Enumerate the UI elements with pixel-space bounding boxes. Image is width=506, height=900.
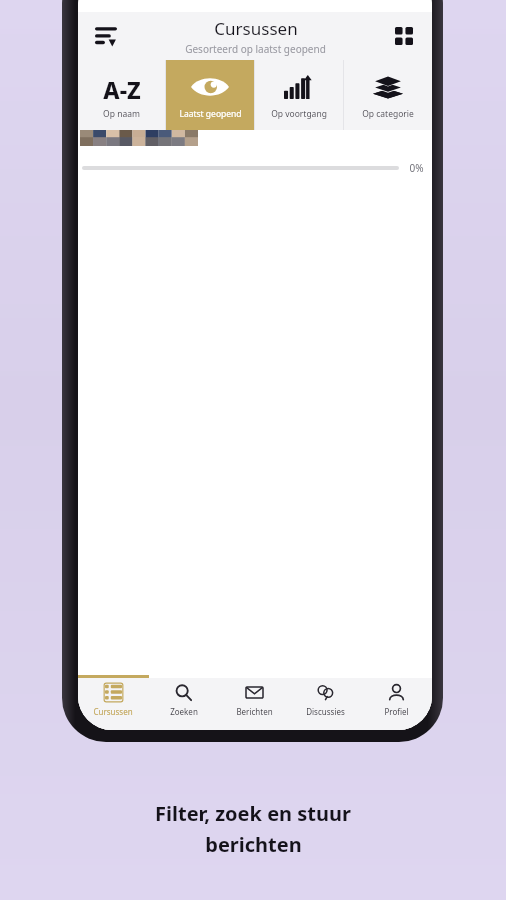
button[interactable]: Discussies — [290, 678, 361, 728]
staticText: Cursussen — [93, 706, 133, 717]
button[interactable]: Sorteren — [86, 16, 126, 56]
staticText: Op categorie — [362, 108, 414, 120]
button[interactable]: Zoeken — [148, 678, 219, 728]
staticText: Gesorteerd op laatst geopend — [185, 42, 326, 56]
staticText: Op naam — [103, 108, 140, 120]
button[interactable] — [80, 130, 198, 146]
staticText: berichten — [205, 831, 302, 858]
button[interactable]: Op categorie — [344, 60, 432, 130]
staticText: Filter, zoek en stuur — [155, 800, 351, 827]
staticText: Zoeken — [170, 706, 198, 717]
button[interactable]: Berichten — [219, 678, 290, 728]
staticText: 0% — [409, 161, 424, 175]
button[interactable]: Cursussen — [78, 678, 148, 728]
staticText: Profiel — [384, 706, 409, 717]
button[interactable]: Profiel — [361, 678, 432, 728]
button[interactable]: Op voortgang — [255, 60, 343, 130]
button[interactable]: Laatst geopend — [166, 60, 254, 130]
staticText: Laatst geopend — [179, 108, 242, 120]
staticText: Op voortgang — [271, 108, 327, 120]
button[interactable]: A-Z — [78, 60, 165, 130]
staticText: Cursussen — [214, 17, 298, 40]
staticText: A-Z — [103, 74, 141, 100]
button[interactable]: Rasterweergave — [384, 16, 424, 56]
staticText: Discussies — [306, 706, 345, 717]
staticText: Berichten — [236, 706, 273, 717]
